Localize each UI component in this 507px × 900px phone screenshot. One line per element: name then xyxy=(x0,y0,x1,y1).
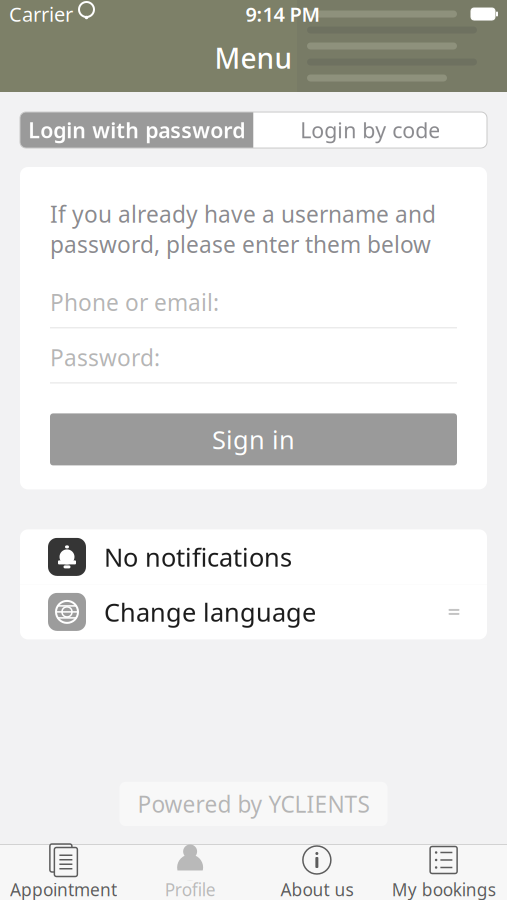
button[interactable]: Login by code xyxy=(253,112,487,148)
staticText: 9:14 PM xyxy=(245,1,320,27)
button[interactable]: Profile xyxy=(127,845,254,900)
staticText: Powered by YCLIENTS xyxy=(137,789,369,819)
button[interactable]: Sign in xyxy=(50,413,457,465)
button[interactable]: Change language xyxy=(20,584,487,639)
button[interactable]: Login with password xyxy=(20,112,253,148)
staticText: If you already have a username and passw… xyxy=(50,199,436,259)
staticText: Phone or email: xyxy=(50,287,219,317)
staticText: About us xyxy=(280,878,353,900)
button[interactable]: About us xyxy=(253,845,380,900)
staticText: Login by code xyxy=(300,116,440,144)
staticText: Menu xyxy=(214,39,292,77)
staticText: No notifications xyxy=(104,540,292,574)
staticText: Profile xyxy=(165,878,216,900)
staticText: Sign in xyxy=(212,423,295,456)
staticText: Password: xyxy=(50,342,160,372)
button[interactable]: Appointment xyxy=(0,845,127,900)
staticText: Carrier xyxy=(9,1,73,27)
button[interactable]: No notifications xyxy=(20,529,487,584)
staticText: My bookings xyxy=(392,878,496,900)
button[interactable]: My bookings xyxy=(380,845,507,900)
staticText: Login with password xyxy=(28,116,245,144)
staticText: Appointment xyxy=(10,878,117,900)
staticText: Change language xyxy=(104,595,316,629)
